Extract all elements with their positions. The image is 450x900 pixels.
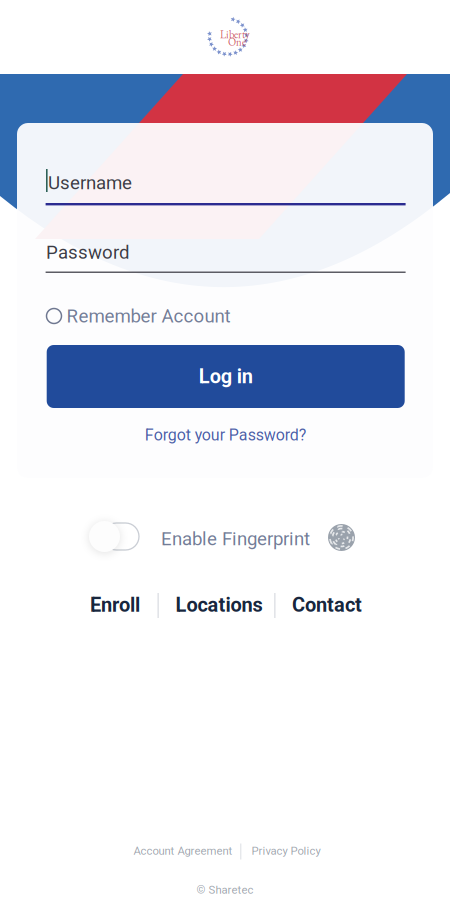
staticText: Enable Fingerprint [161, 528, 310, 550]
staticText: Contact [292, 593, 362, 617]
button[interactable]: Enroll [82, 590, 148, 620]
staticText: Forgot your Password? [145, 426, 307, 444]
button[interactable]: Contact [285, 590, 369, 620]
button[interactable]: Privacy Policy [243, 841, 329, 861]
staticText: Username [48, 172, 132, 194]
button[interactable]: Locations [167, 590, 271, 620]
button[interactable]: Log in [47, 345, 405, 408]
staticText: One [228, 35, 246, 49]
staticText: Password [46, 241, 130, 263]
staticText: Privacy Policy [251, 844, 320, 858]
staticText: Log in [199, 365, 253, 388]
button[interactable]: Forgot your Password? [47, 418, 405, 452]
staticText: Liberty [220, 27, 250, 41]
staticText: Account Agreement [133, 844, 232, 858]
button[interactable]: Enable Fingerprint [89, 521, 139, 552]
button[interactable]: Remember Account [46, 303, 230, 329]
staticText: Enroll [90, 593, 140, 617]
staticText: Remember Account [66, 305, 230, 327]
staticText: Locations [175, 593, 262, 617]
staticText: © Sharetec [196, 883, 253, 897]
button[interactable]: Account Agreement [124, 841, 242, 861]
